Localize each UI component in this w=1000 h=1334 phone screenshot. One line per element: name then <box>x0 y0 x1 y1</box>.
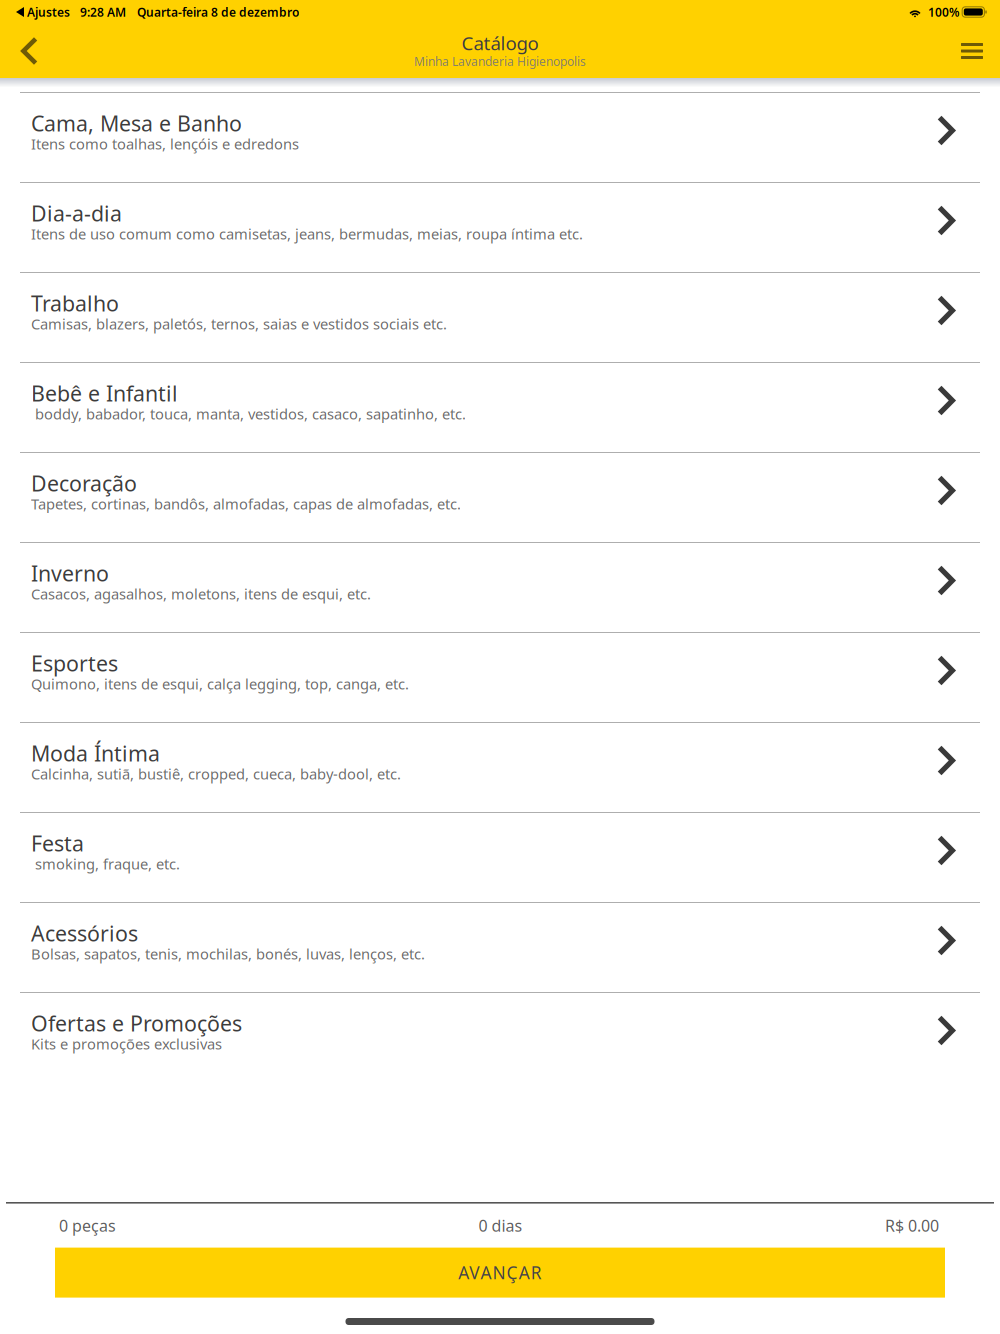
button[interactable]: Ofertas e Promoções <box>0 992 1000 1082</box>
button[interactable]: Bebê e Infantil <box>0 362 1000 452</box>
staticText: Acessórios <box>31 919 138 947</box>
staticText: Quarta-feira 8 de dezembro <box>137 4 299 20</box>
staticText: boddy, babador, touca, manta, vestidos, … <box>31 404 466 423</box>
staticText: Itens de uso comum como camisetas, jeans… <box>31 224 583 243</box>
button[interactable]: Menu <box>941 24 1000 78</box>
staticText: Kits e promoções exclusivas <box>31 1034 222 1053</box>
staticText: R$ 0.00 <box>885 1215 939 1236</box>
staticText: Cama, Mesa e Banho <box>31 109 242 137</box>
button[interactable]: Moda Íntima <box>0 722 1000 812</box>
staticText: Bebê e Infantil <box>31 379 178 407</box>
staticText: Tapetes, cortinas, bandôs, almofadas, ca… <box>31 494 461 513</box>
staticText: Bolsas, sapatos, tenis, mochilas, bonés,… <box>31 944 425 963</box>
staticText: Casacos, agasalhos, moletons, itens de e… <box>31 584 371 603</box>
staticText: Calcinha, sutiã, bustiê, cropped, cueca,… <box>31 764 401 783</box>
staticText: Inverno <box>31 559 109 587</box>
staticText: 0 dias <box>478 1215 522 1236</box>
button[interactable]: Dia-a-dia <box>0 182 1000 272</box>
staticText: Itens como toalhas, lençóis e edredons <box>31 134 299 153</box>
staticText: 9:28 AM <box>80 4 126 20</box>
button[interactable]: Cama, Mesa e Banho <box>0 92 1000 182</box>
staticText: AVANÇAR <box>458 1261 542 1284</box>
staticText: Camisas, blazers, paletós, ternos, saias… <box>31 314 447 333</box>
staticText: Decoração <box>31 469 137 497</box>
staticText: Trabalho <box>31 289 119 317</box>
button[interactable]: Voltar <box>0 24 58 78</box>
staticText: Quimono, itens de esqui, calça legging, … <box>31 674 409 693</box>
button[interactable]: Decoração <box>0 452 1000 542</box>
button[interactable]: Festa <box>0 812 1000 902</box>
staticText: Catálogo <box>461 30 538 55</box>
button[interactable]: Esportes <box>0 632 1000 722</box>
button[interactable]: AVANÇAR <box>55 1248 945 1298</box>
staticText: Ajustes <box>27 4 70 20</box>
staticText: Esportes <box>31 649 118 677</box>
button[interactable]: Inverno <box>0 542 1000 632</box>
staticText: 100% <box>928 4 960 20</box>
staticText: Minha Lavanderia Higienopolis <box>414 53 586 69</box>
staticText: Moda Íntima <box>31 739 160 767</box>
staticText: Festa <box>31 829 84 857</box>
staticText: smoking, fraque, etc. <box>31 854 180 873</box>
button[interactable]: Trabalho <box>0 272 1000 362</box>
button[interactable]: Acessórios <box>0 902 1000 992</box>
staticText: Dia-a-dia <box>31 199 122 227</box>
staticText: 0 peças <box>59 1215 116 1236</box>
staticText: Ofertas e Promoções <box>31 1009 242 1037</box>
